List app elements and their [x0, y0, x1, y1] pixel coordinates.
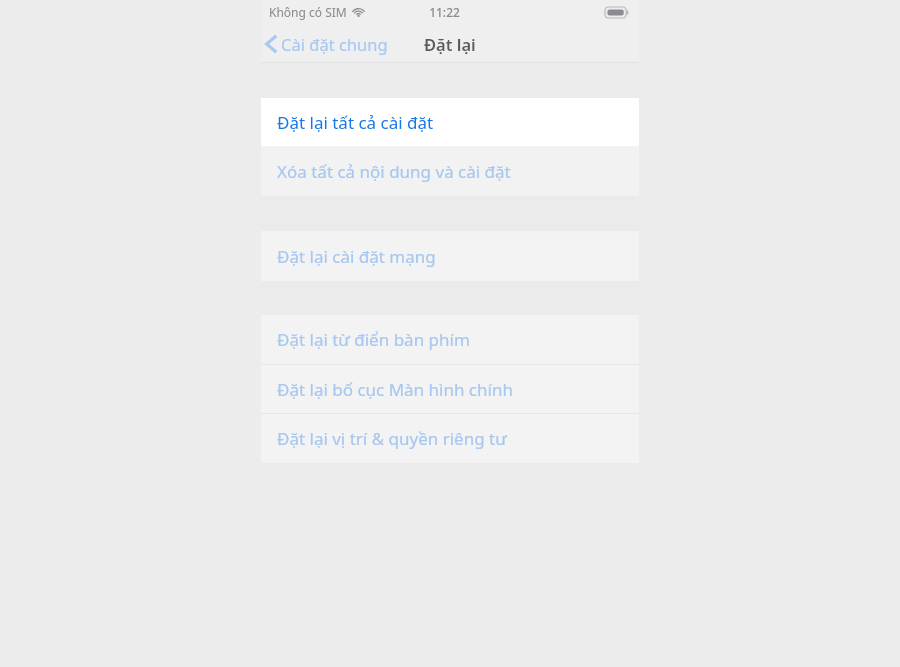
staticText: Đặt lại vị trí & quyền riêng tư — [277, 427, 507, 450]
staticText: Cài đặt chung — [281, 33, 388, 55]
button[interactable]: Đặt lại bố cục Màn hình chính — [261, 365, 639, 413]
button[interactable]: Đặt lại tất cả cài đặt — [261, 98, 639, 146]
staticText: Xóa tất cả nội dung và cài đặt — [277, 160, 511, 183]
button[interactable]: Xóa tất cả nội dung và cài đặt — [261, 146, 639, 196]
button[interactable]: Đặt lại từ điển bàn phím — [261, 315, 639, 364]
staticText: Đặt lại cài đặt mạng — [277, 245, 436, 268]
staticText: 11:22 — [429, 4, 460, 20]
button[interactable]: Đặt lại vị trí & quyền riêng tư — [261, 414, 639, 463]
staticText: Đặt lại tất cả cài đặt — [277, 111, 434, 134]
staticText: Không có SIM — [269, 4, 347, 20]
button[interactable]: Đặt lại cài đặt mạng — [261, 231, 639, 281]
staticText: Đặt lại từ điển bàn phím — [277, 328, 470, 351]
button[interactable]: Back — [261, 24, 394, 63]
staticText: Đặt lại bố cục Màn hình chính — [277, 378, 513, 401]
other: Back — [264, 33, 279, 55]
staticText: Đặt lại — [424, 33, 476, 55]
